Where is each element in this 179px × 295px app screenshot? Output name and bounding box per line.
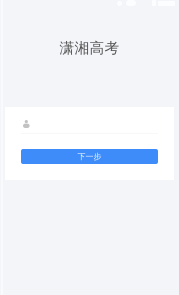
staticText: 潇湘高考 — [59, 39, 119, 57]
button[interactable]: 账号 — [21, 112, 158, 134]
button[interactable]: 下一步 — [21, 149, 158, 164]
staticText: 下一步 — [77, 152, 101, 161]
